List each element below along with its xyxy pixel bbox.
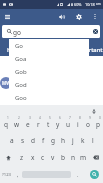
staticText: 5 (49, 116, 51, 120)
button[interactable]: . (71, 166, 85, 183)
staticText: a (10, 136, 14, 145)
staticText: 0 (99, 116, 101, 120)
button[interactable]: u (63, 115, 73, 132)
staticText: j (72, 136, 74, 145)
staticText: v (51, 153, 55, 162)
button[interactable]: Gob (9, 65, 89, 78)
button[interactable]: t (43, 115, 53, 132)
button[interactable]: d (28, 132, 38, 149)
staticText: ?123 (2, 172, 12, 178)
staticText: . (77, 171, 79, 178)
staticText: go (13, 28, 21, 37)
staticText: Goo (15, 94, 27, 102)
staticText: r (37, 120, 40, 129)
button[interactable]: l (88, 132, 98, 149)
button[interactable]: v (48, 149, 58, 166)
button[interactable]: Goo (9, 91, 89, 104)
button[interactable]: c (38, 149, 48, 166)
button[interactable]: b (58, 149, 68, 166)
button[interactable]: i (73, 115, 83, 132)
staticText: x (31, 153, 35, 162)
staticText: am (96, 2, 101, 6)
button[interactable]: z (16, 149, 27, 166)
staticText: 4 (39, 116, 41, 120)
staticText: g (51, 136, 55, 145)
staticText: u (66, 120, 71, 129)
button[interactable]: a (6, 132, 17, 149)
staticText: 9 (89, 116, 91, 120)
button[interactable]: w (11, 115, 22, 132)
staticText: k (81, 136, 85, 145)
staticText: p (96, 120, 100, 129)
staticText: y (56, 120, 60, 129)
staticText: n (71, 153, 76, 162)
staticText: Goa (15, 55, 27, 63)
staticText: z (20, 153, 24, 162)
staticText: 6 (59, 116, 61, 120)
staticText: Important (74, 46, 103, 54)
button[interactable]: Important (69, 43, 103, 56)
button[interactable]: x (27, 149, 38, 166)
staticText: MW (2, 80, 11, 86)
staticText: l (92, 136, 94, 145)
button[interactable]: o (83, 115, 93, 132)
button[interactable]: Backspace (88, 149, 103, 166)
staticText: t (47, 120, 50, 129)
staticText: b (61, 153, 65, 162)
staticText: Go (15, 42, 23, 50)
button[interactable]: k (78, 132, 88, 149)
staticText: i (77, 120, 79, 129)
button[interactable]: Home (0, 43, 34, 56)
staticText: c (41, 153, 45, 162)
staticText: q (4, 120, 8, 129)
button[interactable]: y (53, 115, 63, 132)
staticText: h (61, 136, 66, 145)
button[interactable]: Clear search (90, 25, 100, 38)
staticText: Gob (15, 68, 27, 76)
button[interactable]: Sound (55, 10, 68, 23)
button[interactable]: Navigation menu (1, 10, 14, 23)
button[interactable]: Settings (72, 10, 85, 23)
button[interactable]: g (48, 132, 58, 149)
staticText: 10:18 (85, 2, 95, 7)
button[interactable]: MW (0, 77, 12, 89)
staticText: w (14, 120, 20, 129)
button[interactable]: s (17, 132, 28, 149)
staticText: Home (7, 46, 24, 54)
staticText: e (26, 120, 30, 129)
staticText: 60% (74, 2, 82, 7)
staticText: 3 (29, 116, 31, 120)
button[interactable]: q (0, 115, 11, 132)
button[interactable]: Goa (9, 52, 89, 65)
button[interactable]: f (38, 132, 48, 149)
button[interactable]: More options (88, 10, 101, 23)
staticText: m (80, 153, 87, 162)
button[interactable]: j (68, 132, 78, 149)
button[interactable]: Voice input (89, 106, 99, 116)
staticText: 2 (18, 116, 20, 120)
button[interactable]: r (33, 115, 43, 132)
button[interactable]: p (93, 115, 103, 132)
button[interactable]: m (78, 149, 88, 166)
button[interactable]: n (68, 149, 78, 166)
staticText: f (42, 136, 45, 145)
button[interactable]: ?123 (0, 166, 13, 183)
staticText: o (86, 120, 90, 129)
button[interactable]: h (58, 132, 68, 149)
staticText: 8 (79, 116, 81, 120)
button[interactable]: God (9, 78, 89, 91)
staticText: 1 (7, 116, 9, 120)
staticText: , (17, 171, 19, 178)
staticText: 7 (69, 116, 71, 120)
button[interactable]: Shift (0, 149, 16, 166)
staticText: s (21, 136, 25, 145)
staticText: God (15, 81, 27, 89)
button[interactable]: Search (90, 170, 99, 179)
button[interactable]: e (22, 115, 33, 132)
button[interactable]: Go (9, 39, 89, 52)
button[interactable]: , (13, 166, 22, 183)
staticText: d (31, 136, 35, 145)
button[interactable]: go (2, 25, 100, 38)
